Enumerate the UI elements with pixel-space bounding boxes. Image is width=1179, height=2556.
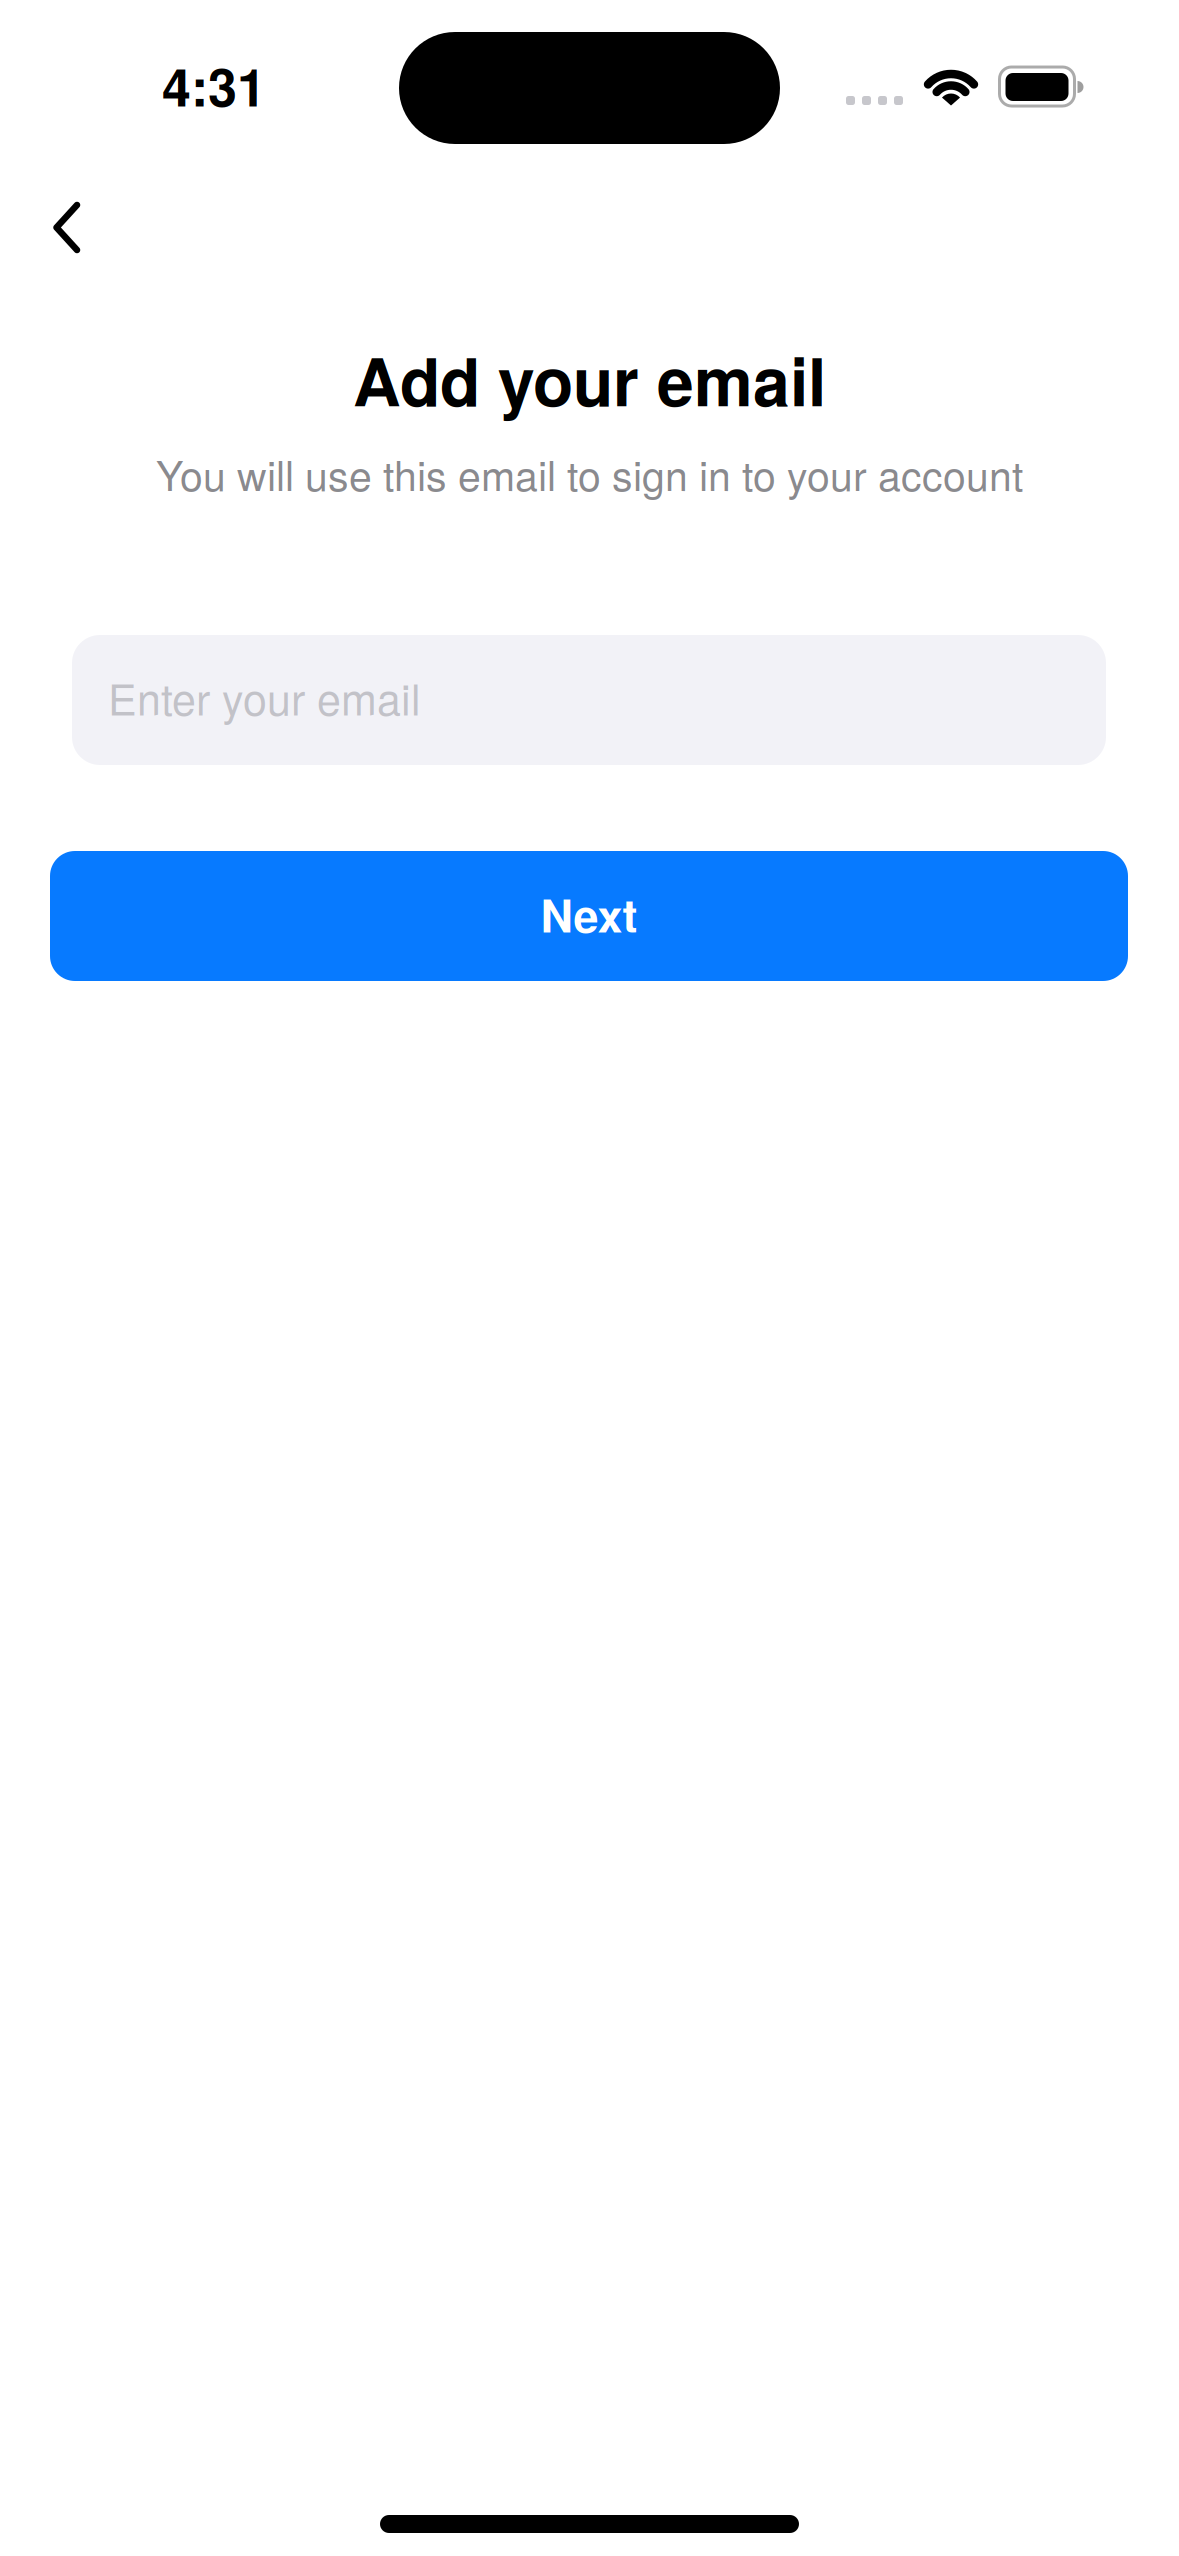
staticText: Add your email xyxy=(353,332,826,426)
button[interactable]: Next xyxy=(50,851,1128,981)
staticText: Next xyxy=(540,882,637,946)
staticText: Enter your email xyxy=(108,666,421,728)
staticText: You will use this email to sign in to yo… xyxy=(156,444,1023,503)
button[interactable]: Enter your email xyxy=(72,635,1106,765)
staticText: 4:31 xyxy=(162,48,266,122)
button[interactable]: Back xyxy=(20,170,140,286)
